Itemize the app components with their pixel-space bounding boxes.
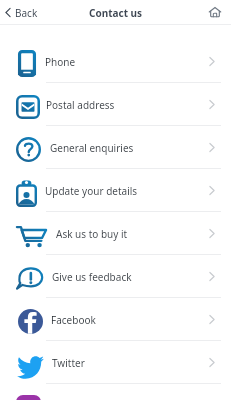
staticText: Give us feedback <box>52 270 132 284</box>
staticText: Phone <box>45 55 76 69</box>
button[interactable]: Home <box>205 2 225 22</box>
button[interactable]: Postal address <box>0 83 231 126</box>
button[interactable]: Update your details <box>0 169 231 212</box>
staticText: Back <box>15 6 38 20</box>
button[interactable]: General enquiries <box>0 126 231 169</box>
button[interactable]: Facebook <box>0 298 231 341</box>
staticText: General enquiries <box>50 141 134 155</box>
button[interactable]: Phone <box>0 40 231 83</box>
button[interactable]: Give us feedback <box>0 255 231 298</box>
staticText: Update your details <box>45 184 138 198</box>
button[interactable]: Twitter <box>0 341 231 384</box>
button[interactable]: Ask us to buy it <box>0 212 231 255</box>
staticText: Postal address <box>46 98 115 112</box>
button[interactable]: Back <box>0 0 44 25</box>
staticText: Contact us <box>89 6 143 20</box>
button[interactable]: Instagram <box>0 384 231 400</box>
staticText: Facebook <box>51 313 96 327</box>
staticText: Ask us to buy it <box>56 227 128 241</box>
staticText: Twitter <box>52 356 85 370</box>
